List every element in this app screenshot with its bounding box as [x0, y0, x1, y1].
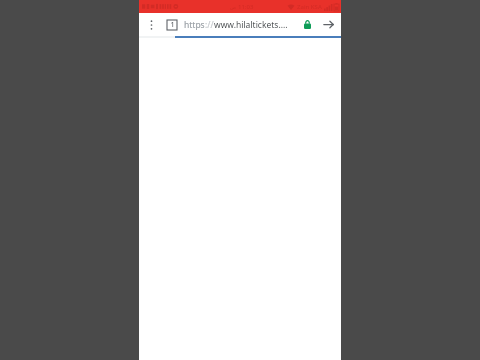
staticText: https	[184, 19, 205, 31]
button[interactable]: Go	[318, 13, 338, 36]
staticText: Zain KSA	[297, 3, 322, 11]
button[interactable]: Site information, connection is secure	[300, 13, 314, 36]
staticText: 11:03	[238, 3, 254, 11]
staticText: www.hilaltickets....	[214, 19, 288, 31]
button[interactable]: Switch tabs, 1 tab open	[163, 13, 181, 36]
button[interactable]: More options	[144, 13, 159, 36]
staticText: 1	[170, 20, 175, 30]
staticText: ص	[230, 4, 237, 10]
staticText: ://	[205, 19, 214, 31]
button[interactable]: https	[184, 13, 298, 36]
